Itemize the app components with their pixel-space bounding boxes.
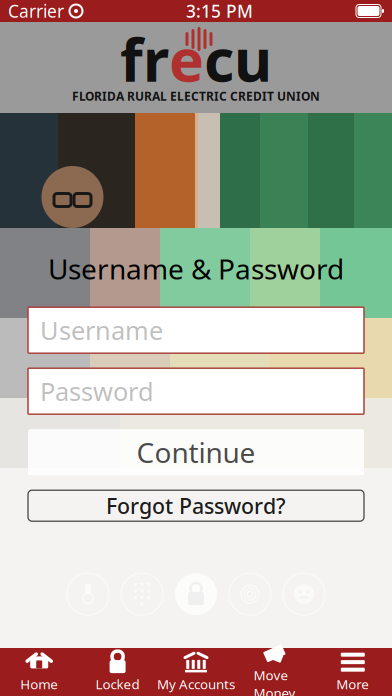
staticText: fr [120, 20, 169, 98]
button[interactable]: Home [0, 648, 78, 696]
button[interactable]: More [314, 648, 392, 696]
button[interactable]: My Accounts [157, 648, 235, 696]
staticText: cu [204, 20, 272, 98]
button[interactable]: Face ID [283, 573, 325, 615]
staticText: Continue [136, 434, 255, 471]
button[interactable]: Password login [175, 573, 217, 615]
staticText: Password [40, 374, 154, 408]
staticText: Carrier [8, 0, 64, 22]
button[interactable]: Move Money [235, 648, 314, 696]
staticText: 3:15 PM [186, 0, 253, 22]
button[interactable]: Locked [78, 648, 157, 696]
button[interactable]: Continue [28, 429, 364, 475]
staticText: Username [40, 313, 163, 347]
staticText: Home [20, 675, 58, 693]
staticText: Move Money [253, 666, 295, 696]
staticText: More [336, 675, 369, 693]
staticText: My Accounts [157, 675, 235, 693]
staticText: Forgot Password? [106, 491, 286, 520]
button[interactable]: Forgot Password? [28, 490, 364, 521]
staticText: Username & Password [48, 250, 344, 287]
staticText: e [169, 20, 204, 98]
staticText: FLORIDA RURAL ELECTRIC CREDIT UNION [72, 88, 320, 104]
staticText: Locked [96, 675, 140, 693]
